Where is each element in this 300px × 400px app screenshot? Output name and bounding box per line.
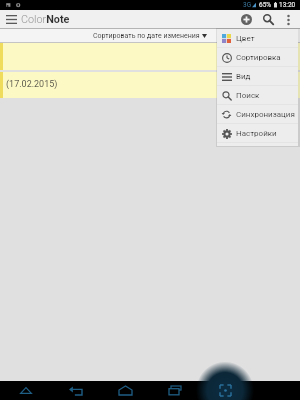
staticText: Настройки [236,129,277,138]
staticText: (17.02.2015) [6,79,58,90]
button[interactable]: Синхронизация [217,105,298,124]
staticText: 13:20 [279,1,296,9]
staticText: Сортировать по дате изменения [93,32,200,40]
button[interactable]: Add note [236,10,257,29]
staticText: ColorNote [21,13,70,26]
button[interactable]: Up [16,381,36,400]
button[interactable]: More options [279,10,297,29]
staticText: Синхронизация [236,110,295,119]
staticText: Сортировка [236,53,281,62]
button[interactable]: Вид [217,67,298,86]
staticText: Цвет [236,34,255,43]
button[interactable]: Поиск [217,86,298,105]
staticText: Вид [236,72,251,81]
button[interactable]: Home [115,381,135,400]
button[interactable]: Screenshot [215,381,235,400]
button[interactable]: Search [257,10,279,29]
button[interactable]: Настройки [217,124,298,143]
button[interactable]: Back [65,381,85,400]
button[interactable]: Сортировать по дате изменения [0,29,300,43]
button[interactable]: Menu [0,10,22,29]
button[interactable]: (17.02.2015) [0,72,300,98]
staticText: 3G [243,1,252,9]
staticText: 65% [259,1,272,9]
button[interactable] [0,43,300,70]
button[interactable]: Recents [165,381,185,400]
staticText: Поиск [236,91,260,100]
button[interactable]: Цвет [217,29,298,48]
button[interactable]: Сортировка [217,48,298,67]
